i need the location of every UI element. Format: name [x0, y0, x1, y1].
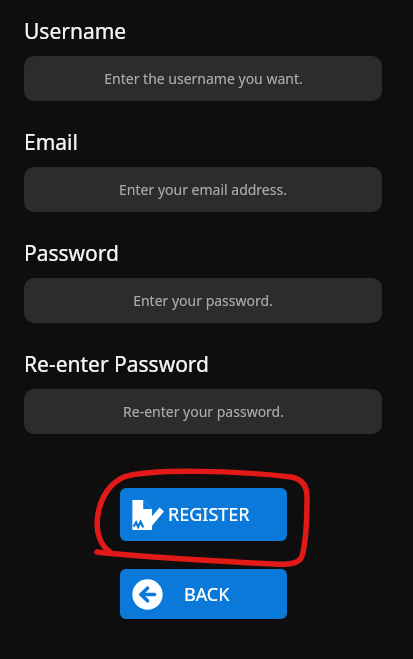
staticText: Re-enter your password.: [123, 402, 284, 421]
other: Register document icon: [131, 498, 165, 532]
staticText: Re-enter Password: [24, 350, 210, 379]
button[interactable]: Register document icon: [120, 488, 287, 541]
staticText: Enter your email address.: [119, 180, 287, 199]
button[interactable]: Back: [120, 569, 287, 619]
staticText: REGISTER: [168, 502, 250, 527]
staticText: Enter your password.: [133, 291, 273, 310]
button[interactable]: Enter your email address.: [24, 167, 382, 212]
staticText: Enter the username you want.: [104, 69, 303, 88]
button[interactable]: Enter your password.: [24, 278, 382, 323]
staticText: BACK: [184, 582, 230, 607]
button[interactable]: Re-enter your password.: [24, 389, 382, 434]
staticText: Email: [24, 128, 78, 157]
staticText: Username: [24, 17, 127, 46]
other: Back: [131, 578, 164, 611]
button[interactable]: Enter the username you want.: [24, 56, 382, 101]
staticText: Password: [24, 239, 119, 268]
